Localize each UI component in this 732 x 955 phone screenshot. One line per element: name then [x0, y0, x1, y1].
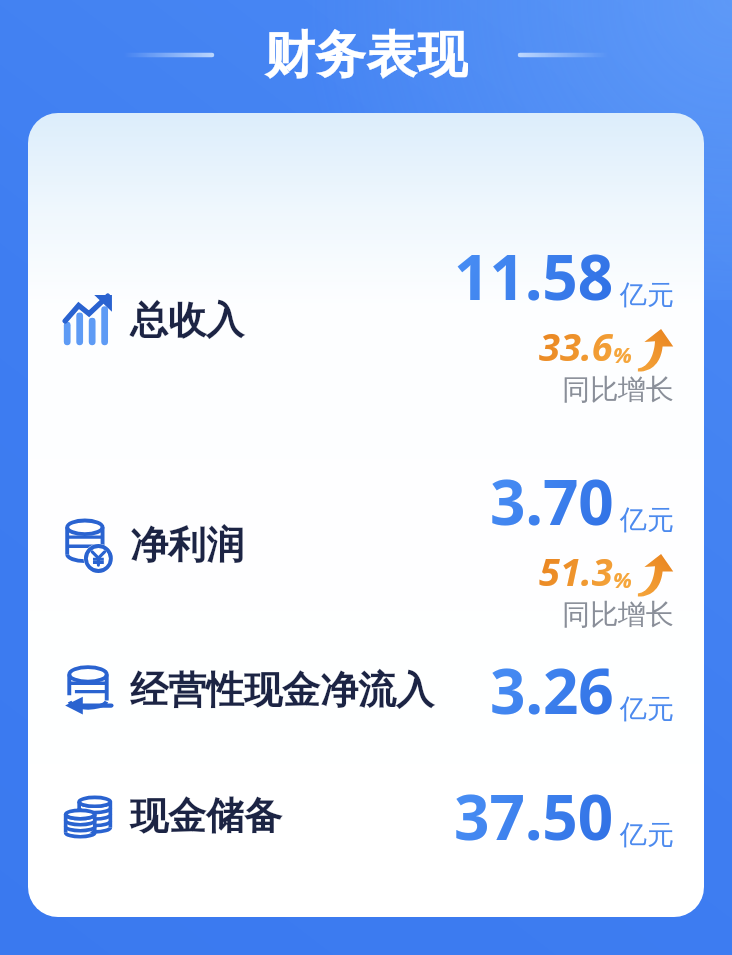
button[interactable]: Total revenue [28, 225, 704, 415]
staticText: 同比增长 [562, 372, 674, 407]
staticText: 亿元 [620, 503, 674, 537]
other: Net profit [62, 519, 114, 571]
staticText: 3.26 [490, 648, 614, 732]
staticText: % [613, 564, 632, 594]
other: Operating cash inflow [62, 664, 114, 716]
other: Cash reserve [62, 790, 114, 842]
staticText: 37.50 [454, 774, 614, 858]
staticText: 11.58 [454, 234, 614, 318]
staticText: 同比增长 [562, 597, 674, 632]
other: Total revenue [62, 294, 114, 346]
staticText: 财务表现 [264, 24, 468, 86]
staticText: 经营性现金净流入 [130, 666, 434, 714]
staticText: 亿元 [620, 818, 674, 852]
staticText: 51.3 [539, 545, 613, 597]
staticText: 总收入 [130, 296, 244, 344]
staticText: 33.6 [539, 320, 613, 372]
staticText: 亿元 [620, 278, 674, 312]
button[interactable]: Cash reserve [28, 761, 704, 871]
staticText: % [613, 339, 632, 369]
staticText: 亿元 [620, 692, 674, 726]
button[interactable]: Operating cash inflow [28, 635, 704, 745]
staticText: 净利润 [130, 521, 244, 569]
button[interactable]: Net profit [28, 450, 704, 640]
staticText: 3.70 [490, 459, 614, 543]
staticText: 现金储备 [130, 792, 282, 840]
